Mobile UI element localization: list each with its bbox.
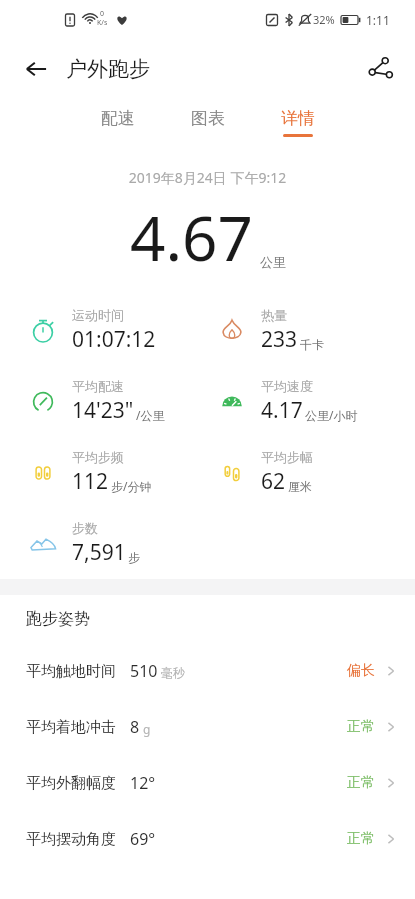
staticText: 平均摆动角度 bbox=[26, 830, 116, 849]
staticText: 1:11 bbox=[366, 12, 390, 28]
button[interactable]: 平均摆动角度 bbox=[0, 811, 415, 867]
staticText: 正常 bbox=[347, 830, 375, 848]
button[interactable]: 图表 bbox=[185, 104, 231, 141]
staticText: 正常 bbox=[347, 718, 375, 736]
button[interactable]: 运动时间 bbox=[0, 307, 207, 354]
staticText: /公里 bbox=[136, 407, 165, 423]
staticText: g bbox=[143, 721, 151, 737]
staticText: 正常 bbox=[347, 774, 375, 792]
staticText: 510 bbox=[130, 660, 158, 682]
staticText: 4.17 bbox=[261, 396, 303, 425]
staticText: 01:07:12 bbox=[72, 325, 156, 354]
staticText: 运动时间 bbox=[72, 307, 124, 323]
button[interactable]: 平均步幅 bbox=[207, 449, 415, 496]
button[interactable]: 平均配速 bbox=[0, 378, 207, 425]
button[interactable]: 热量 bbox=[207, 307, 415, 354]
button[interactable]: 平均着地冲击 bbox=[0, 699, 415, 755]
staticText: 公里/小时 bbox=[305, 407, 358, 423]
button[interactable]: 平均外翻幅度 bbox=[0, 755, 415, 811]
staticText: K/s bbox=[97, 18, 108, 28]
staticText: 平均步频 bbox=[72, 449, 124, 465]
staticText: 详情 bbox=[281, 108, 315, 129]
staticText: 步/分钟 bbox=[111, 478, 152, 494]
staticText: 平均速度 bbox=[261, 378, 313, 394]
button[interactable]: Share bbox=[359, 48, 401, 90]
staticText: 32% bbox=[313, 12, 335, 27]
staticText: 公里 bbox=[260, 254, 286, 270]
staticText: 偏长 bbox=[347, 662, 375, 680]
button[interactable]: 步数 bbox=[0, 520, 207, 567]
staticText: 步 bbox=[128, 550, 140, 565]
staticText: 69° bbox=[130, 828, 156, 850]
staticText: 8 bbox=[130, 716, 140, 738]
button[interactable]: 平均步频 bbox=[0, 449, 207, 496]
staticText: 平均触地时间 bbox=[26, 662, 116, 681]
staticText: 配速 bbox=[101, 108, 135, 129]
staticText: 厘米 bbox=[288, 479, 312, 494]
staticText: 跑步姿势 bbox=[26, 609, 90, 629]
staticText: 步数 bbox=[72, 520, 98, 536]
staticText: 2019年8月24日 下午9:12 bbox=[0, 168, 415, 187]
button[interactable]: 详情 bbox=[275, 104, 321, 141]
button[interactable]: 配速 bbox=[95, 104, 141, 141]
staticText: 0 bbox=[100, 9, 105, 19]
button[interactable]: 平均速度 bbox=[207, 378, 415, 425]
staticText: 4.67 bbox=[130, 195, 254, 279]
staticText: 平均着地冲击 bbox=[26, 718, 116, 737]
button[interactable]: Back bbox=[16, 49, 56, 89]
staticText: 平均外翻幅度 bbox=[26, 774, 116, 793]
staticText: 7,591 bbox=[72, 538, 126, 567]
staticText: 千卡 bbox=[300, 337, 324, 352]
staticText: 12° bbox=[130, 772, 156, 794]
staticText: 户外跑步 bbox=[66, 56, 150, 82]
staticText: 热量 bbox=[261, 307, 287, 323]
staticText: 233 bbox=[261, 325, 298, 354]
staticText: 图表 bbox=[191, 108, 225, 129]
staticText: 毫秒 bbox=[161, 665, 185, 680]
staticText: 平均步幅 bbox=[261, 449, 313, 465]
staticText: 112 bbox=[72, 467, 109, 496]
staticText: 平均配速 bbox=[72, 378, 124, 394]
staticText: 62 bbox=[261, 467, 286, 496]
button[interactable]: 平均触地时间 bbox=[0, 643, 415, 699]
staticText: 14'23" bbox=[72, 396, 134, 425]
